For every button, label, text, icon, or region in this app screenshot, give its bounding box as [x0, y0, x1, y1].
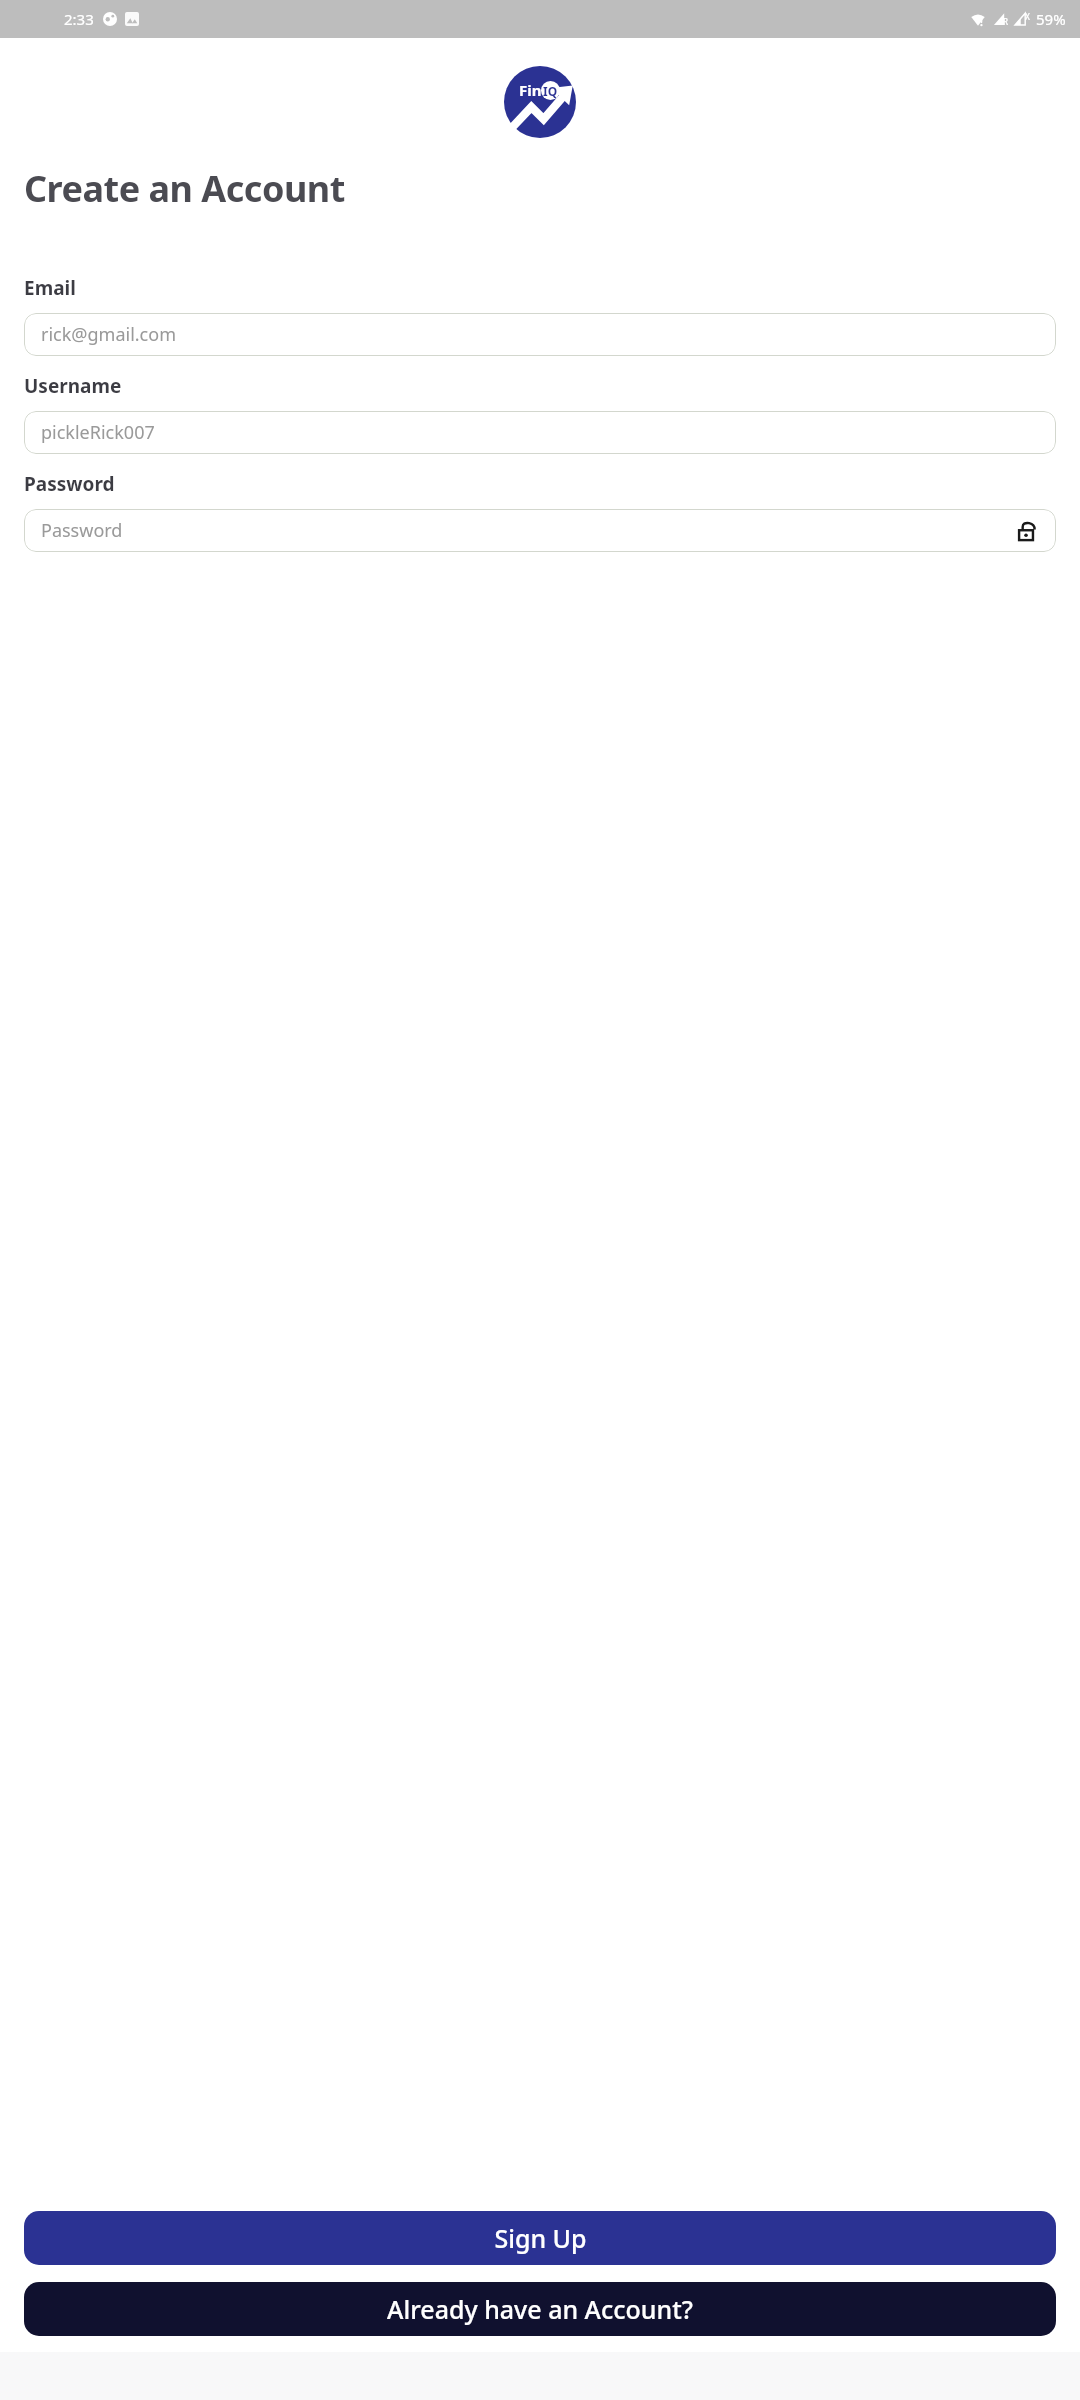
staticText: Already have an Account?: [387, 2292, 693, 2326]
staticText: 59%: [1036, 9, 1066, 29]
button[interactable]: Password: [24, 509, 1056, 552]
staticText: Username: [24, 373, 122, 399]
staticText: Fin: [519, 80, 542, 100]
staticText: R: [1003, 16, 1009, 27]
staticText: rick@gmail.com: [41, 322, 1039, 347]
staticText: IQ: [543, 83, 558, 99]
staticText: X: [1025, 11, 1030, 22]
staticText: Email: [24, 275, 76, 301]
button[interactable]: pickleRick007: [24, 411, 1056, 454]
button[interactable]: Sign Up: [24, 2211, 1056, 2265]
staticText: Create an Account: [24, 164, 345, 213]
staticText: 2:33: [64, 9, 94, 29]
staticText: Password: [41, 518, 1015, 543]
staticText: pickleRick007: [41, 420, 1039, 445]
staticText: Password: [24, 471, 115, 497]
button[interactable]: Already have an Account?: [24, 2282, 1056, 2336]
button[interactable]: rick@gmail.com: [24, 313, 1056, 356]
staticText: Sign Up: [494, 2221, 587, 2255]
other: Toggle password visibility: [1015, 519, 1039, 543]
